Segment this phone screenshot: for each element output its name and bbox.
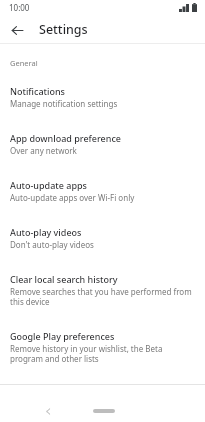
staticText: Clear local search history: [10, 273, 118, 285]
staticText: Don't auto-play videos: [10, 239, 94, 250]
button[interactable]: Home: [93, 409, 115, 413]
button[interactable]: Clear local search history: [0, 267, 205, 313]
button[interactable]: Auto-update apps: [0, 173, 205, 209]
staticText: Auto-update apps: [10, 179, 87, 191]
staticText: Remove history in your wishlist, the Bet…: [10, 343, 193, 364]
staticText: Remove searches that you have performed …: [10, 286, 193, 307]
button[interactable]: Notifications: [0, 79, 205, 115]
staticText: Google Play preferences: [10, 330, 115, 342]
staticText: 10:00: [9, 2, 30, 13]
staticText: Auto-update apps over Wi-Fi only: [10, 192, 135, 203]
staticText: Over any network: [10, 145, 77, 156]
button[interactable]: App download preference: [0, 126, 205, 162]
staticText: Auto-play videos: [10, 226, 82, 238]
button[interactable]: Back: [6, 19, 28, 41]
staticText: Settings: [39, 21, 88, 38]
staticText: Manage notification settings: [10, 98, 118, 109]
staticText: Notifications: [10, 85, 65, 97]
button[interactable]: Auto-play videos: [0, 220, 205, 256]
staticText: App download preference: [10, 132, 121, 144]
staticText: General: [10, 58, 38, 68]
button[interactable]: Google Play preferences: [0, 324, 205, 370]
button[interactable]: Back: [38, 401, 58, 421]
